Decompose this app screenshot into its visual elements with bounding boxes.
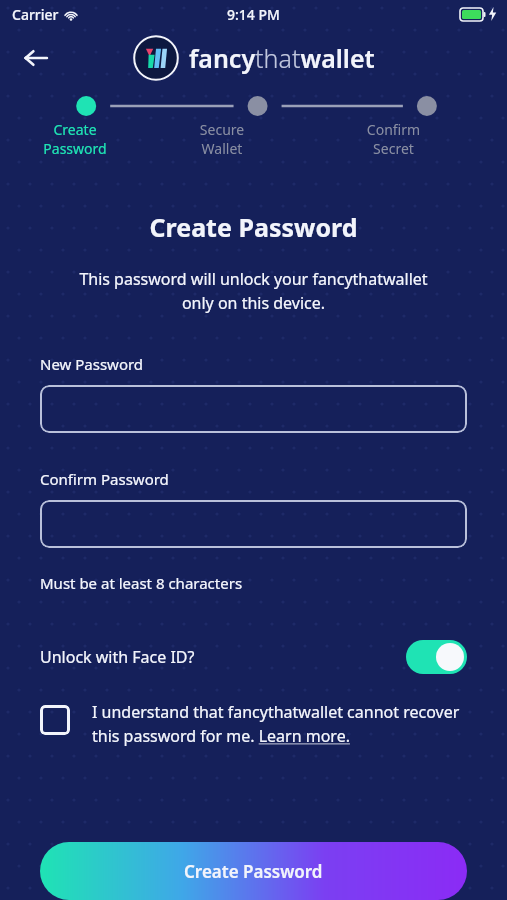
button[interactable]: Back <box>14 36 58 80</box>
staticText: New Password <box>40 354 144 374</box>
button[interactable]: Unlock with Face ID? <box>40 637 467 677</box>
staticText: Create Password <box>184 860 323 883</box>
button[interactable]: Confirm Password field <box>40 500 467 548</box>
staticText: Create Password <box>0 210 507 244</box>
staticText: Confirm Secret <box>288 120 499 158</box>
staticText: This password will unlock your fancythat… <box>24 268 483 314</box>
staticText: I understand that fancythatwallet cannot… <box>92 701 467 747</box>
button[interactable]: Agreement checkbox <box>40 701 467 747</box>
staticText: Carrier <box>12 5 59 24</box>
staticText: Create Password <box>1 120 149 158</box>
staticText: Secure Wallet <box>148 120 296 158</box>
button[interactable]: Create Password <box>40 842 467 900</box>
staticText: Confirm Password <box>40 469 169 489</box>
staticText: 9:14 PM <box>227 5 280 24</box>
button[interactable]: New Password field <box>40 385 467 433</box>
other: Agreement checkbox <box>40 705 70 735</box>
staticText: fancythatwallet <box>189 41 375 75</box>
staticText: Unlock with Face ID? <box>40 646 406 668</box>
staticText: Must be at least 8 characters <box>40 573 243 593</box>
